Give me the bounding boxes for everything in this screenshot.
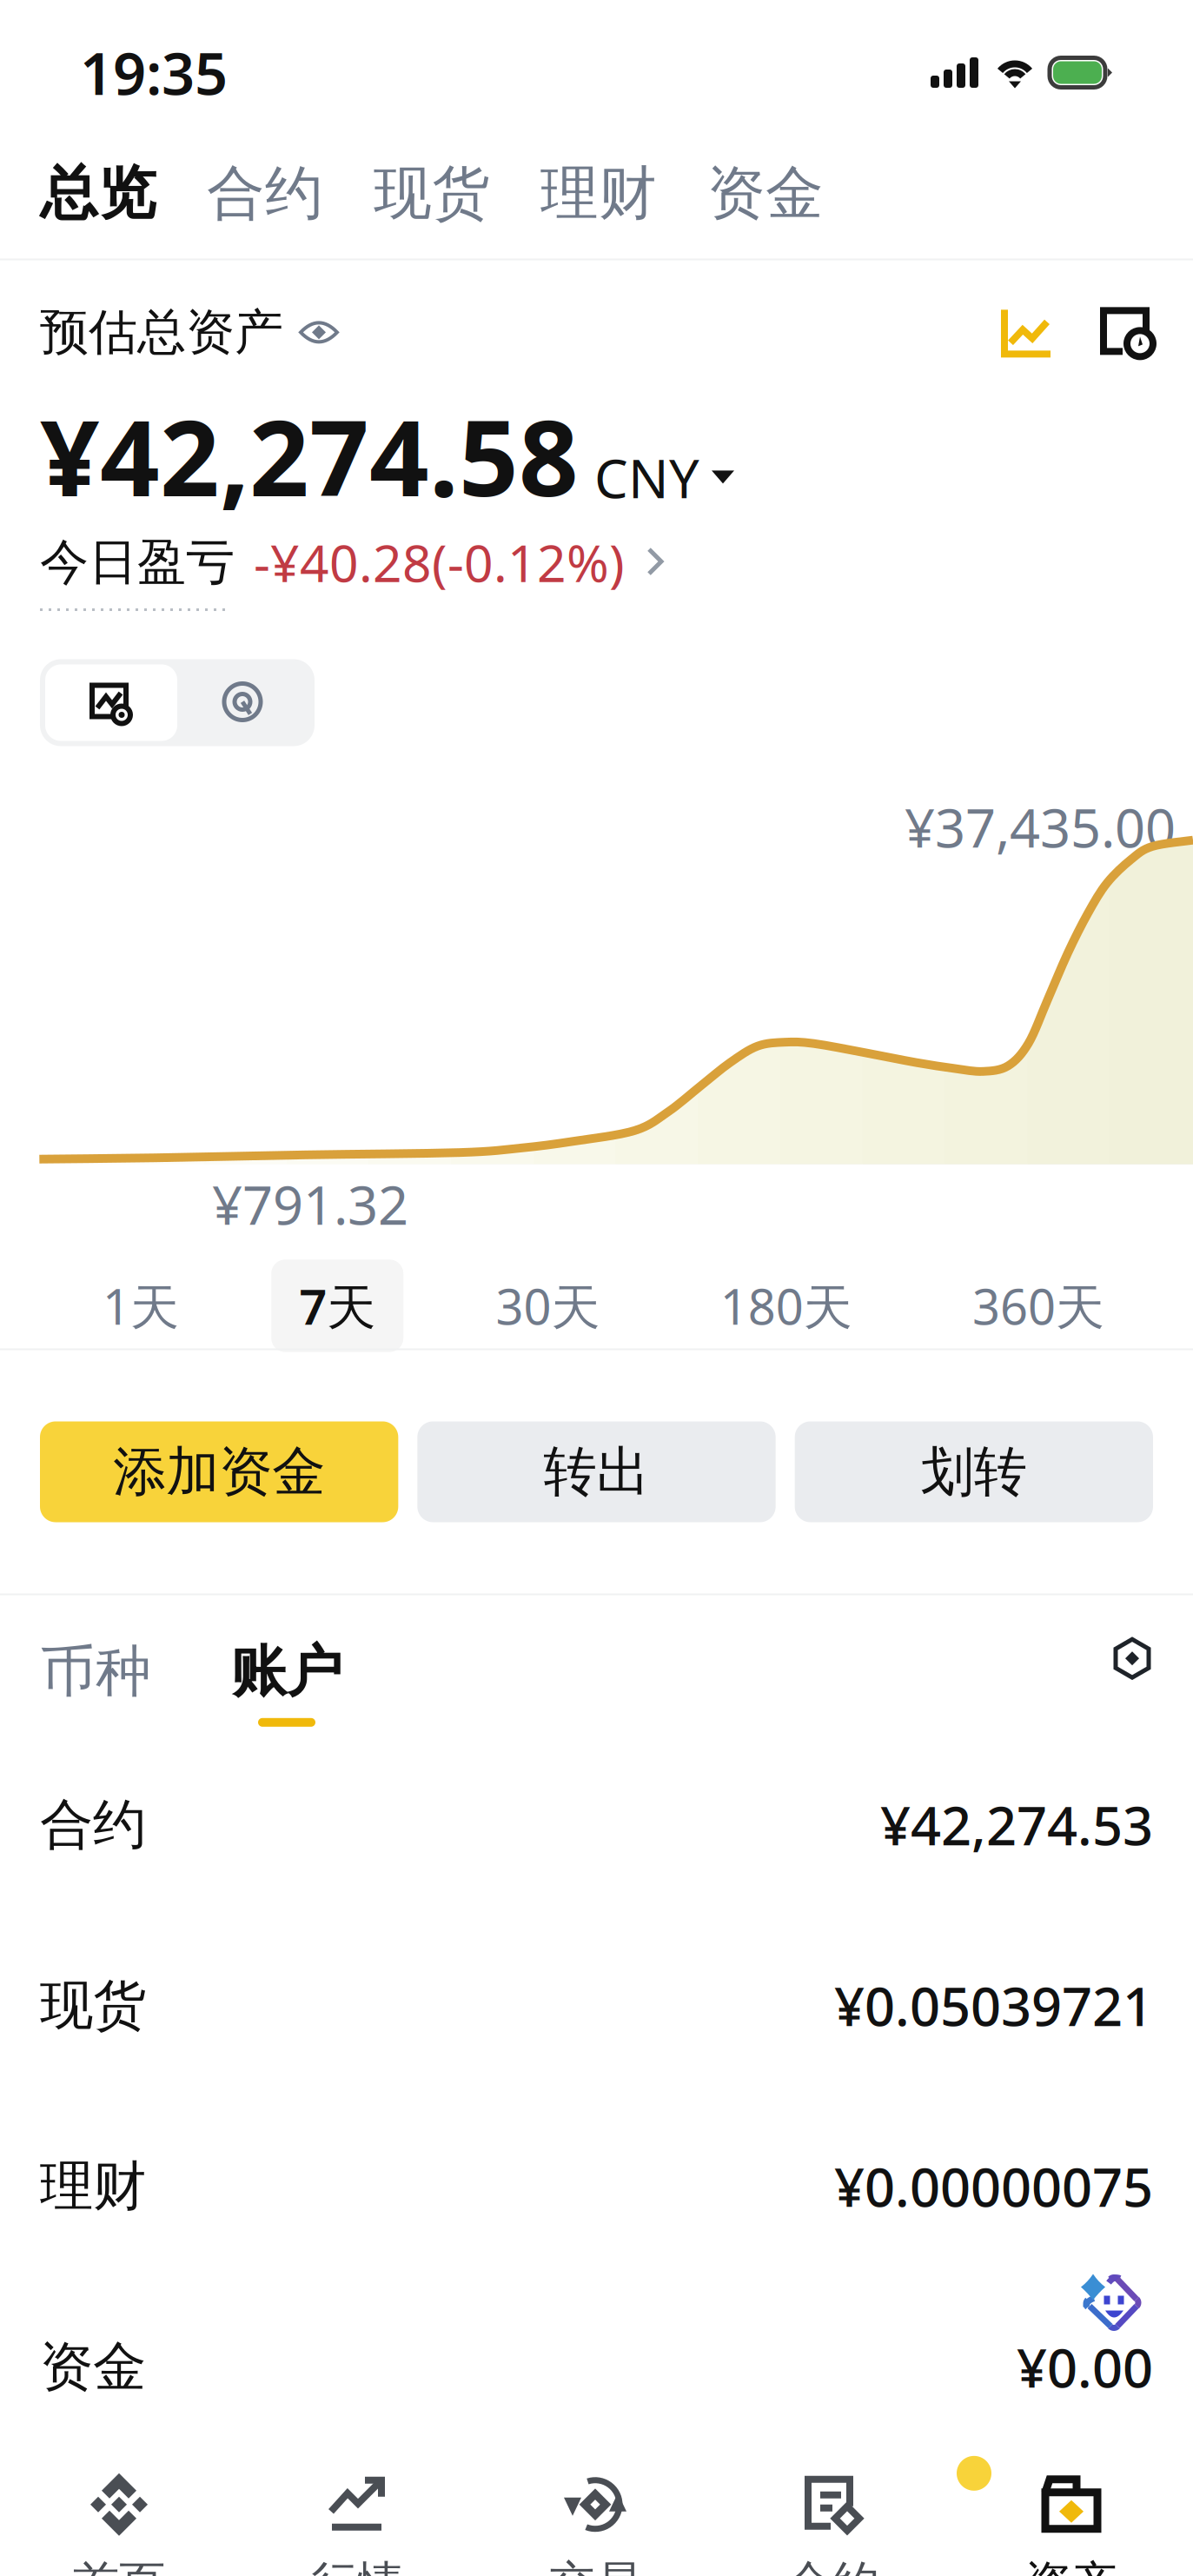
button[interactable]: Order history (1054, 305, 1153, 359)
button[interactable]: 360天 (944, 1260, 1132, 1352)
staticText: 总览 (40, 158, 156, 229)
button[interactable]: 1天 (75, 1260, 207, 1352)
staticText: 行情 (311, 2555, 403, 2576)
staticText: 7天 (299, 1273, 376, 1338)
button[interactable]: 添加资金 (40, 1421, 398, 1522)
button[interactable]: Analytics (1000, 308, 1054, 357)
staticText: 首页 (73, 2555, 165, 2576)
button[interactable]: 现货 (0, 1915, 1193, 2096)
staticText: 转出 (543, 1439, 650, 1504)
staticText: 添加资金 (113, 1439, 325, 1504)
staticText: ¥37,435.00 (905, 792, 1176, 862)
staticText: 资金 (707, 158, 824, 229)
staticText: 360天 (972, 1273, 1104, 1338)
button[interactable]: Quick action (957, 2456, 991, 2491)
staticText: ¥42,274.53 (880, 1789, 1153, 1860)
staticText: ¥0.05039721 (834, 1970, 1153, 2041)
staticText: 180天 (720, 1273, 852, 1338)
button[interactable]: 首页 (0, 2419, 238, 2576)
staticText: 现货 (40, 1973, 146, 2038)
button[interactable]: 合约 (182, 148, 348, 239)
button[interactable]: Chart view (45, 664, 177, 741)
button[interactable]: 划转 (795, 1421, 1153, 1522)
button[interactable]: 理财 (515, 148, 682, 239)
button[interactable]: 7天 (271, 1260, 403, 1352)
staticText: CNY (594, 442, 699, 513)
button[interactable]: 预估总资产 (40, 302, 339, 362)
staticText: ¥0.00000075 (834, 2151, 1153, 2222)
button[interactable]: 合约 (714, 2419, 952, 2576)
button[interactable]: AI assistant (1070, 2264, 1145, 2338)
button[interactable]: 合约 (0, 1734, 1193, 1915)
button[interactable]: 交易 (476, 2419, 714, 2576)
staticText: 账户 (231, 1638, 342, 1706)
staticText: ¥0.00 (1017, 2332, 1153, 2402)
staticText: 交易 (549, 2555, 641, 2576)
staticText: 今日盈亏 (40, 532, 235, 592)
button[interactable]: 资金 (0, 2277, 1193, 2457)
staticText: 1天 (103, 1273, 179, 1338)
staticText: 理财 (540, 158, 657, 229)
staticText: 19:35 (80, 34, 228, 111)
staticText: 合约 (207, 158, 323, 229)
staticText: 理财 (40, 2153, 146, 2219)
staticText: 合约 (787, 2555, 879, 2576)
staticText: ¥42,274.58 (40, 387, 579, 525)
button[interactable]: Allocation view (177, 664, 309, 741)
staticText: 合约 (40, 1792, 146, 1857)
button[interactable]: 转出 (417, 1421, 776, 1522)
staticText: ¥791.32 (212, 1169, 408, 1240)
button[interactable]: 总览 (0, 148, 182, 239)
button[interactable]: 180天 (692, 1260, 880, 1352)
button[interactable]: 行情 (238, 2419, 476, 2576)
button[interactable]: 30天 (468, 1260, 628, 1352)
staticText: 现货 (374, 158, 490, 229)
button[interactable]: 今日盈亏 (40, 528, 1153, 611)
button[interactable]: Filter (1111, 1638, 1153, 1679)
staticText: 预估总资产 (40, 302, 283, 362)
button[interactable]: CNY (579, 442, 734, 525)
button[interactable]: 理财 (0, 2096, 1193, 2277)
button[interactable]: 币种 (40, 1638, 151, 1727)
button[interactable]: 资金 (682, 148, 849, 239)
staticText: -¥40.28(-0.12%) (254, 528, 625, 596)
button[interactable]: 资产 (952, 2419, 1190, 2576)
staticText: 币种 (40, 1638, 151, 1706)
staticText: 资金 (40, 2334, 146, 2400)
button[interactable]: 账户 (151, 1638, 342, 1727)
staticText: 划转 (921, 1439, 1027, 1504)
staticText: 资产 (1025, 2555, 1117, 2576)
button[interactable]: 现货 (348, 148, 515, 239)
staticText: 30天 (496, 1273, 600, 1338)
